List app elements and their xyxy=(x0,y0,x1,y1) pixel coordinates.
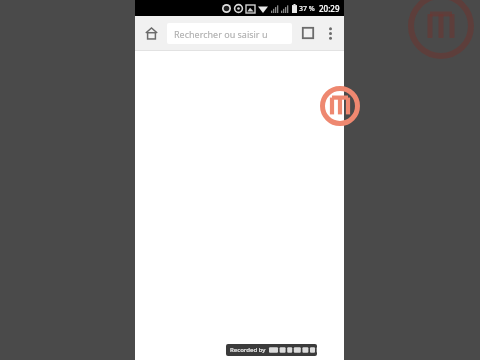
staticText: 20:29 xyxy=(319,3,340,14)
staticText: 37 % xyxy=(299,4,315,14)
staticText: Recorded by xyxy=(230,346,266,354)
staticText: Rechercher ou saisir u xyxy=(174,28,268,40)
button[interactable]: More options xyxy=(320,23,340,43)
button[interactable]: Tabs xyxy=(296,21,320,45)
button[interactable]: Home xyxy=(139,21,163,45)
button[interactable]: Rechercher ou saisir u xyxy=(167,23,292,44)
